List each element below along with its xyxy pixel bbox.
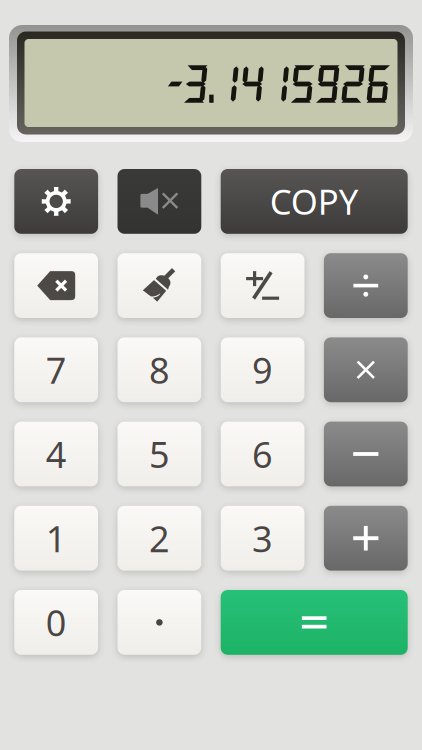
button[interactable]: Divide	[324, 253, 408, 318]
button[interactable]: 4	[14, 422, 98, 486]
button[interactable]: Backspace	[14, 253, 98, 318]
staticText: 9	[252, 346, 273, 394]
button[interactable]: 7	[14, 337, 98, 402]
button[interactable]: Decimal point	[117, 590, 201, 655]
button[interactable]: 3	[221, 506, 304, 571]
button[interactable]: 1	[14, 506, 98, 571]
button[interactable]: 2	[117, 506, 201, 571]
staticText: 7	[46, 346, 67, 394]
staticText: 5	[149, 430, 170, 478]
staticText: COPY	[270, 178, 359, 224]
button[interactable]: Settings	[14, 169, 98, 234]
button[interactable]: 5	[117, 422, 201, 486]
button[interactable]: 0	[14, 590, 98, 655]
button[interactable]: Plus	[324, 506, 408, 571]
staticText: 0	[46, 598, 67, 646]
button[interactable]: Equals	[221, 590, 408, 655]
button[interactable]: Multiply	[324, 337, 408, 402]
button[interactable]: Toggle sound	[117, 169, 201, 234]
staticText: 4	[46, 430, 67, 478]
button[interactable]: Plus minus	[221, 253, 304, 318]
staticText: 8	[149, 346, 170, 394]
staticText: 3	[252, 514, 273, 562]
button[interactable]: COPY	[221, 169, 408, 234]
button[interactable]: Clear	[117, 253, 201, 318]
button[interactable]: 9	[221, 337, 304, 402]
staticText: 1	[46, 514, 67, 562]
button[interactable]: Minus	[324, 422, 408, 486]
button[interactable]: 8	[117, 337, 201, 402]
staticText: 2	[149, 514, 170, 562]
button[interactable]: 6	[221, 422, 304, 486]
staticText: 6	[252, 430, 273, 478]
